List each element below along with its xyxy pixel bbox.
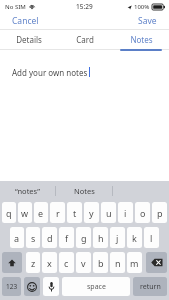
staticText: Add your own notes <box>12 67 88 78</box>
button[interactable]: Details <box>0 30 57 49</box>
staticText: q <box>6 207 12 219</box>
staticText: 100% <box>134 3 150 11</box>
staticText: n <box>115 257 121 269</box>
staticText: Card <box>76 34 94 45</box>
button[interactable]: e <box>34 202 48 223</box>
staticText: Notes <box>74 186 95 196</box>
button[interactable]: Shift <box>2 252 22 273</box>
button[interactable]: i <box>118 202 133 223</box>
staticText: w <box>21 207 29 219</box>
staticText: o <box>140 207 146 219</box>
staticText: z <box>31 257 36 269</box>
button[interactable]: w <box>18 202 32 223</box>
staticText: e <box>38 207 44 219</box>
button[interactable]: return <box>133 277 167 296</box>
staticText: i <box>124 207 127 219</box>
button[interactable]: a <box>10 227 24 248</box>
button[interactable]: k <box>127 227 142 248</box>
staticText: f <box>65 232 69 244</box>
staticText: return <box>140 282 161 292</box>
button[interactable]: Emoji <box>24 277 40 296</box>
button[interactable]: r <box>50 202 65 223</box>
staticText: No SIM <box>5 3 26 11</box>
staticText: Cancel <box>12 15 39 27</box>
staticText: y <box>89 207 94 219</box>
staticText: s <box>31 232 36 244</box>
staticText: r <box>56 207 60 219</box>
button[interactable]: s <box>26 227 40 248</box>
staticText: u <box>106 207 112 219</box>
button[interactable]: z <box>26 252 40 273</box>
button[interactable]: 123 <box>2 277 21 296</box>
button[interactable]: Card <box>57 30 113 49</box>
staticText: d <box>47 232 53 244</box>
staticText: h <box>98 232 104 244</box>
staticText: v <box>81 257 86 269</box>
staticText: j <box>116 232 119 244</box>
button[interactable]: l <box>144 227 159 248</box>
button[interactable]: q <box>2 202 16 223</box>
staticText: l <box>150 232 153 244</box>
button[interactable]: Backspace <box>146 252 167 273</box>
staticText: k <box>132 232 137 244</box>
button[interactable]: x <box>42 252 57 273</box>
staticText: m <box>130 257 139 269</box>
staticText: Details <box>16 34 42 45</box>
staticText: c <box>64 257 69 269</box>
staticText: 15:29 <box>76 2 93 11</box>
staticText: space <box>87 282 106 292</box>
button[interactable]: g <box>76 227 91 248</box>
button[interactable]: c <box>59 252 74 273</box>
button[interactable]: m <box>127 252 142 273</box>
button[interactable]: “notes” <box>0 181 55 200</box>
button[interactable]: t <box>67 202 82 223</box>
button[interactable]: p <box>152 202 167 223</box>
button[interactable]: j <box>110 227 125 248</box>
staticText: b <box>98 257 104 269</box>
staticText: Save <box>138 15 157 27</box>
staticText: “notes” <box>15 186 40 196</box>
button[interactable]: o <box>135 202 150 223</box>
button[interactable]: Notes <box>113 30 169 49</box>
button[interactable]: v <box>76 252 91 273</box>
staticText: g <box>81 232 87 244</box>
staticText: x <box>47 257 52 269</box>
button[interactable]: Save <box>126 13 169 29</box>
staticText: p <box>157 207 163 219</box>
staticText: Notes <box>130 34 153 45</box>
button[interactable]: y <box>84 202 99 223</box>
staticText: 123 <box>6 282 18 291</box>
button[interactable]: Notes <box>56 181 112 200</box>
button[interactable]: space <box>62 277 130 296</box>
button[interactable]: Cancel <box>0 13 51 29</box>
staticText: t <box>73 207 77 219</box>
button[interactable]: Dictate <box>43 277 59 296</box>
button[interactable]: b <box>93 252 108 273</box>
button[interactable]: u <box>101 202 116 223</box>
button[interactable]: h <box>93 227 108 248</box>
button[interactable]: d <box>42 227 57 248</box>
button[interactable]: f <box>59 227 74 248</box>
button[interactable]: n <box>110 252 125 273</box>
staticText: a <box>14 232 20 244</box>
